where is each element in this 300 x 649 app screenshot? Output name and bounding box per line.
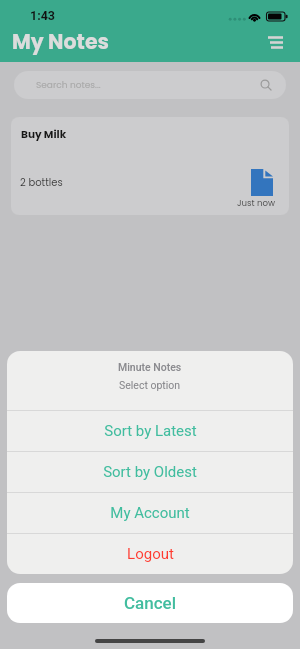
staticText: Sort by Latest — [104, 422, 197, 440]
staticText: Logout — [127, 545, 174, 563]
staticText: My Notes — [12, 27, 109, 56]
staticText: Just now — [237, 197, 276, 209]
staticText: 1:43 — [30, 8, 56, 23]
staticText: Search notes... — [36, 79, 101, 92]
button[interactable]: My Account — [7, 493, 293, 533]
staticText: 2 bottles — [20, 175, 63, 189]
button[interactable]: Cancel — [7, 583, 293, 623]
button[interactable]: Buy Milk — [11, 117, 289, 215]
button[interactable]: Sort by Oldest — [7, 452, 293, 492]
staticText: Minute Notes — [118, 361, 182, 373]
staticText: My Account — [110, 504, 190, 522]
button[interactable]: Search notes... — [14, 71, 286, 99]
button[interactable]: Sort by Latest — [7, 411, 293, 451]
staticText: Sort by Oldest — [103, 463, 197, 481]
button[interactable]: Menu — [264, 32, 288, 54]
button[interactable]: Logout — [7, 534, 293, 574]
staticText: Select option — [119, 379, 181, 391]
staticText: Cancel — [124, 593, 177, 613]
staticText: Buy Milk — [21, 127, 67, 142]
